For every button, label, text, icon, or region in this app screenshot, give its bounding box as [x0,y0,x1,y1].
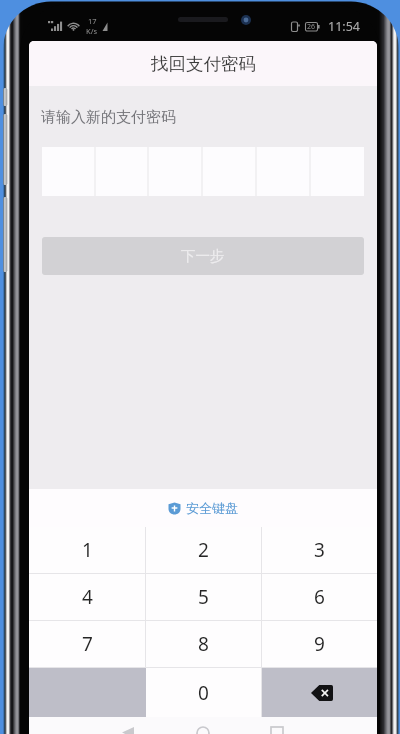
staticText: 3 [314,537,325,563]
staticText: 请输入新的支付密码 [41,108,176,127]
button[interactable]: Home [189,724,217,734]
staticText: 1 [82,537,93,563]
other: Delete [311,685,333,701]
staticText: 2 [198,537,209,563]
button[interactable]: Back [114,724,142,734]
staticText: 7 [82,631,93,657]
button[interactable]: 7 [29,621,145,667]
staticText: 0 [198,680,209,706]
staticText: K/s [86,26,98,36]
staticText: 4 [82,584,93,610]
button[interactable]: 2 [146,527,261,573]
button[interactable]: 5 [146,574,261,620]
staticText: 找回支付密码 [151,53,256,75]
staticText: 8 [198,631,209,657]
button[interactable]: 0 [146,668,261,717]
button[interactable]: 8 [146,621,261,667]
staticText: 5 [198,584,209,610]
staticText: 11:54 [328,18,360,35]
staticText: 9 [314,631,325,657]
button[interactable]: 1 [29,527,145,573]
button[interactable]: 9 [262,621,377,667]
staticText: 26 [307,22,316,32]
button[interactable]: 安全键盘 [29,489,377,527]
staticText: 下一步 [181,247,225,265]
button[interactable]: 4 [29,574,145,620]
staticText: 6 [314,584,325,610]
button[interactable]: 3 [262,527,377,573]
button[interactable]: Recents [263,724,291,734]
button[interactable]: 6 [262,574,377,620]
staticText: 17 [88,16,97,26]
button[interactable]: Delete [262,668,377,717]
staticText: 安全键盘 [186,500,238,516]
